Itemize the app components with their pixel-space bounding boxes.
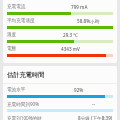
staticText: 799 mA: [71, 4, 88, 10]
staticText: 平均充電速度: [7, 18, 35, 24]
staticText: 充電時間到90%: [7, 101, 40, 107]
staticText: 8分鐘 (下午8:39): [78, 115, 113, 120]
staticText: 電池水平: [7, 87, 26, 93]
staticText: --: [92, 101, 95, 107]
staticText: 4343 mV: [61, 46, 80, 52]
staticText: 29.3 ℃: [63, 32, 78, 38]
staticText: 溫度: [7, 32, 17, 38]
button[interactable]: 平均充電速度: [3, 18, 117, 29]
staticText: 58.8%小時: [77, 18, 100, 24]
button[interactable]: 電池水平: [3, 87, 117, 98]
button[interactable]: 電壓: [3, 46, 117, 57]
button[interactable]: 充電電流: [3, 4, 117, 15]
button[interactable]: 充電時間到90%: [3, 101, 117, 112]
staticText: 92%: [74, 87, 84, 93]
button[interactable]: 充電到100%的時間: [3, 115, 117, 120]
button[interactable]: 溫度: [3, 32, 117, 43]
staticText: 估計充電時間: [7, 71, 45, 79]
staticText: 電壓: [7, 46, 17, 52]
staticText: 充電到100%的時間: [7, 115, 42, 120]
staticText: 充電電流: [7, 4, 26, 10]
button[interactable]: 估計充電時間: [3, 66, 117, 83]
